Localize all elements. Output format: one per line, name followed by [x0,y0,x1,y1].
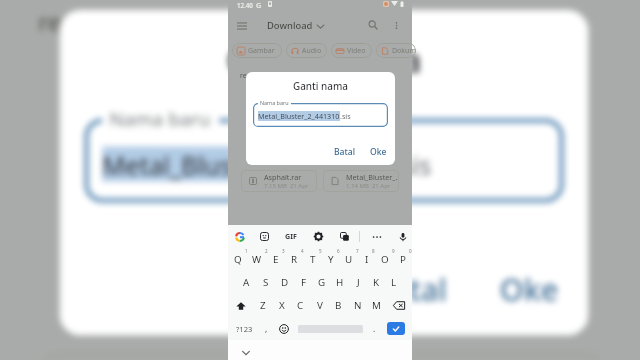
staticText: W [252,253,262,266]
button[interactable]: Enter [387,322,405,335]
staticText: ?123 [236,324,253,334]
staticText: Oke [370,146,387,158]
staticText: , [265,323,268,335]
staticText: G [256,0,262,9]
button[interactable]: M [367,294,386,317]
button[interactable]: D [275,271,294,294]
staticText: 6 [337,248,340,254]
staticText: E [273,253,279,266]
staticText: Metal_Bluster_2_441310 [102,146,393,181]
button[interactable]: B [329,294,348,317]
button[interactable]: Google [233,225,247,248]
button[interactable]: H [331,271,349,294]
button[interactable]: R [285,248,304,271]
staticText: Dokumen [392,46,416,56]
staticText: Nama baru [109,104,212,129]
staticText: .sis [393,146,432,181]
staticText: Asphalt.rar [264,172,302,182]
staticText: Q [234,253,242,266]
staticText: Nama baru [260,99,289,106]
button[interactable]: Emoji [276,317,291,340]
button[interactable]: W [247,248,266,271]
button[interactable]: Audio [286,43,327,58]
button[interactable]: Settings [311,225,325,248]
staticText: 7 [356,248,359,254]
staticText: B [335,299,342,312]
button[interactable]: O [376,248,394,271]
button[interactable]: Y [322,248,340,271]
staticText: V [317,299,323,312]
button[interactable]: Voice input [396,225,410,248]
button[interactable]: I [358,248,376,271]
button[interactable]: GIF [283,230,299,242]
staticText: Metal_Bluster_2_441310 [258,111,340,121]
button[interactable]: Metal_Bluster_... [323,170,399,192]
button[interactable]: . [367,317,381,340]
button[interactable]: Stickers [257,225,271,248]
button[interactable]: Asphalt.rar [42,353,312,360]
button[interactable]: Z [253,294,272,317]
staticText: Audio [302,46,322,56]
button[interactable]: Gambar [232,43,282,58]
staticText: I [365,253,369,266]
staticText: Oke [500,269,560,311]
staticText: 8 [372,248,375,254]
button[interactable]: Search [365,17,381,33]
button[interactable]: Metal_Bluster_... [333,353,603,360]
button[interactable]: V [310,294,329,317]
staticText: Batal [334,146,356,158]
button[interactable]: A [237,271,256,294]
staticText: re [38,6,63,38]
button[interactable]: Video [331,43,372,58]
staticText: 2 [265,248,268,254]
button[interactable]: More [370,225,384,248]
button[interactable]: Asphalt.rar [241,170,317,192]
staticText: O [381,253,389,266]
button[interactable]: T [304,248,322,271]
button[interactable]: ?123 [232,317,257,340]
button[interactable]: L [385,271,403,294]
button[interactable]: Batal [358,262,464,318]
button[interactable]: More options [388,17,404,33]
button[interactable]: , [259,317,273,340]
button[interactable]: Dokumen [376,43,416,58]
staticText: Download [267,19,313,32]
staticText: M [372,299,381,312]
staticText: 9 [392,248,395,254]
button[interactable]: Batal [330,144,360,160]
button[interactable]: Translate [337,225,351,248]
button[interactable]: Q [228,248,247,271]
staticText: U [345,253,353,266]
staticText: 0 [409,248,412,254]
staticText: 1.74 MB 21 Apr [346,182,391,190]
staticText: P [400,253,406,266]
button[interactable]: F [294,271,313,294]
button[interactable]: E [266,248,285,271]
button[interactable]: Oke [366,144,391,160]
button[interactable]: P [394,248,412,271]
staticText: F [301,276,307,289]
staticText: 12.40 [237,1,253,9]
button[interactable]: Oke [485,262,574,318]
button[interactable]: U [340,248,358,271]
button[interactable]: S [256,271,275,294]
button[interactable]: Shift [228,294,253,317]
button[interactable]: K [367,271,385,294]
staticText: Video [347,46,366,56]
staticText: 3 [282,248,285,254]
button[interactable]: N [348,294,367,317]
button[interactable]: Menu [234,18,250,34]
staticText: 5 [319,248,322,254]
button[interactable]: C [291,294,310,317]
button[interactable]: G [313,271,331,294]
button[interactable]: Backspace [386,294,412,317]
button[interactable]: J [349,271,367,294]
staticText: Metal_Bluster_... [346,172,399,182]
staticText: D [281,276,289,289]
staticText: G [318,276,326,289]
button[interactable]: X [272,294,291,317]
staticText: Y [328,253,334,266]
staticText: Batal [372,269,450,311]
staticText: L [391,276,397,289]
